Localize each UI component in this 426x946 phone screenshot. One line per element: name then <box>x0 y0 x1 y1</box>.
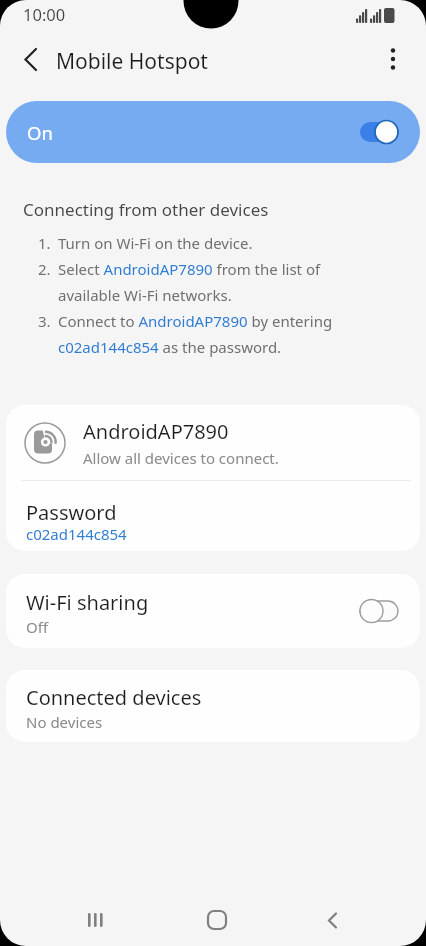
button[interactable] <box>14 48 50 72</box>
staticText: Password <box>26 499 117 526</box>
button[interactable] <box>196 899 238 941</box>
staticText: Allow all devices to connect. <box>83 448 279 468</box>
staticText: Off <box>26 617 49 637</box>
button[interactable]: Password <box>6 481 420 551</box>
staticText: On <box>27 120 53 145</box>
staticText: No devices <box>26 712 103 732</box>
staticText: Select AndroidAP7890 from the list of <box>58 259 321 279</box>
button[interactable]: Connected devices <box>6 670 420 742</box>
staticText: Mobile Hotspot <box>56 47 208 76</box>
staticText: 10:00 <box>23 3 66 25</box>
staticText: c02ad144c854 <box>26 524 127 544</box>
staticText: Wi-Fi sharing <box>26 589 149 616</box>
button[interactable]: Wi-Fi sharing <box>6 574 420 648</box>
button[interactable] <box>378 44 408 76</box>
button[interactable]: On <box>6 101 420 163</box>
staticText: 1. <box>38 233 51 253</box>
staticText: 2. <box>38 259 51 279</box>
button[interactable] <box>76 900 116 940</box>
button[interactable]: AndroidAP7890 <box>6 405 420 481</box>
staticText: Connect to AndroidAP7890 by entering <box>58 311 333 331</box>
staticText: Turn on Wi-Fi on the device. <box>58 233 253 253</box>
staticText: AndroidAP7890 <box>83 418 229 445</box>
staticText: Connecting from other devices <box>23 198 269 221</box>
staticText: Connected devices <box>26 684 202 711</box>
staticText: c02ad144c854 as the password. <box>58 337 282 357</box>
staticText: 3. <box>38 311 51 331</box>
button[interactable] <box>312 900 352 940</box>
staticText: available Wi-Fi networks. <box>58 285 232 305</box>
